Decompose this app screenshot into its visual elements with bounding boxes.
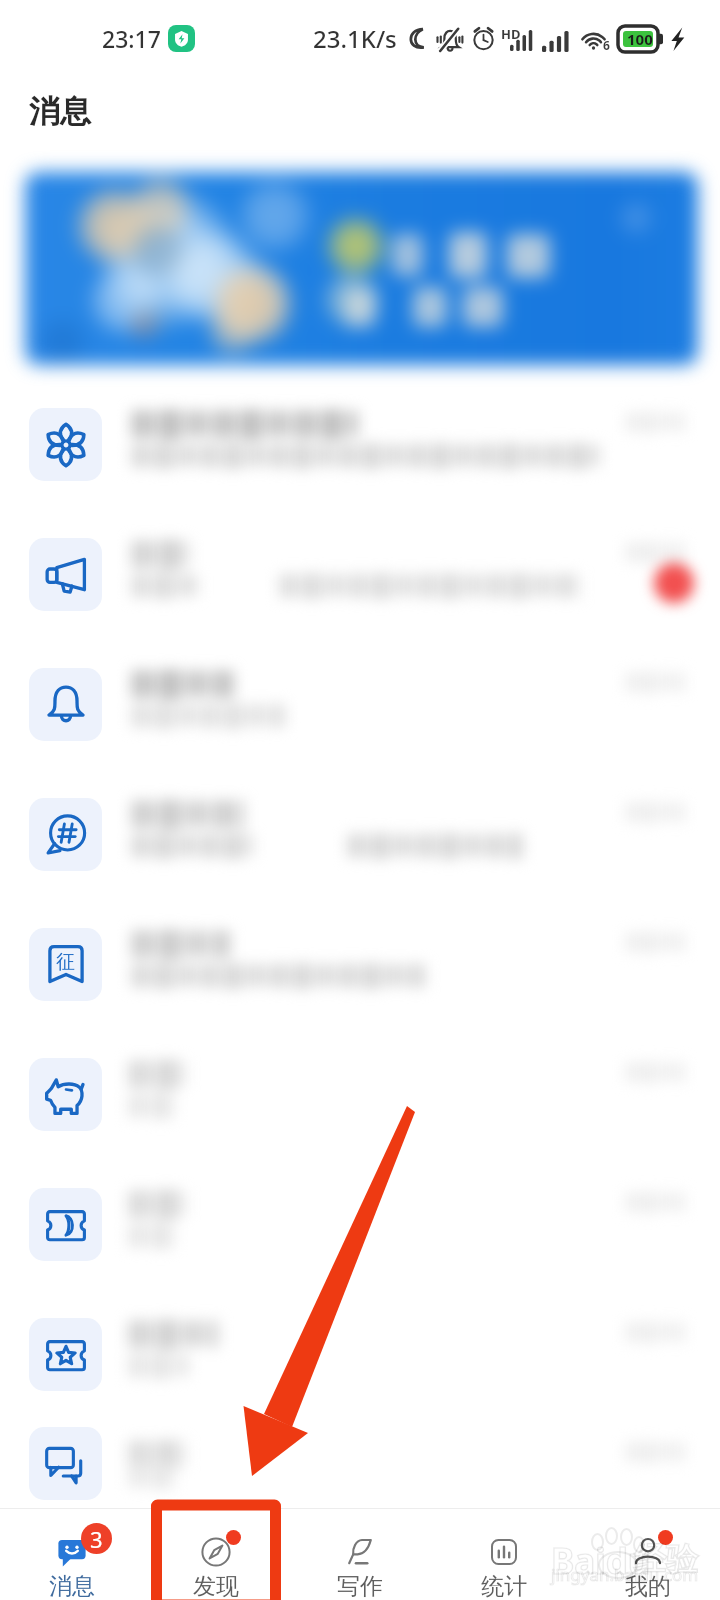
- staticText: 100: [627, 29, 653, 49]
- staticText: 经验: [634, 1539, 698, 1579]
- staticText: 统计: [481, 1572, 527, 1600]
- button[interactable]: 征: [0, 899, 720, 1029]
- button[interactable]: [0, 1289, 720, 1419]
- staticText: 发现: [193, 1572, 239, 1600]
- button[interactable]: 统计: [432, 1508, 576, 1600]
- button[interactable]: [0, 379, 720, 509]
- staticText: HD: [501, 25, 521, 43]
- staticText: 23:17: [102, 23, 161, 54]
- button[interactable]: [0, 1029, 720, 1159]
- staticText: 消息: [29, 92, 91, 131]
- button[interactable]: 写作: [288, 1508, 432, 1600]
- staticText: 消息: [49, 1572, 95, 1600]
- button[interactable]: [0, 1159, 720, 1289]
- button[interactable]: [0, 509, 720, 639]
- button[interactable]: 我的: [576, 1508, 720, 1600]
- staticText: Baidu: [551, 1537, 651, 1585]
- button[interactable]: 3: [0, 1508, 144, 1600]
- staticText: 3: [90, 1524, 103, 1554]
- staticText: 我的: [625, 1572, 671, 1600]
- staticText: 征: [56, 950, 75, 974]
- button[interactable]: [0, 769, 720, 899]
- staticText: 写作: [337, 1572, 383, 1600]
- button[interactable]: [0, 158, 720, 379]
- staticText: 6: [603, 37, 610, 53]
- staticText: jingyan.baidu.com: [551, 1563, 699, 1586]
- button[interactable]: [0, 639, 720, 769]
- button[interactable]: 发现: [144, 1508, 288, 1600]
- staticText: 23.1K/s: [313, 22, 397, 55]
- button[interactable]: [0, 1419, 720, 1508]
